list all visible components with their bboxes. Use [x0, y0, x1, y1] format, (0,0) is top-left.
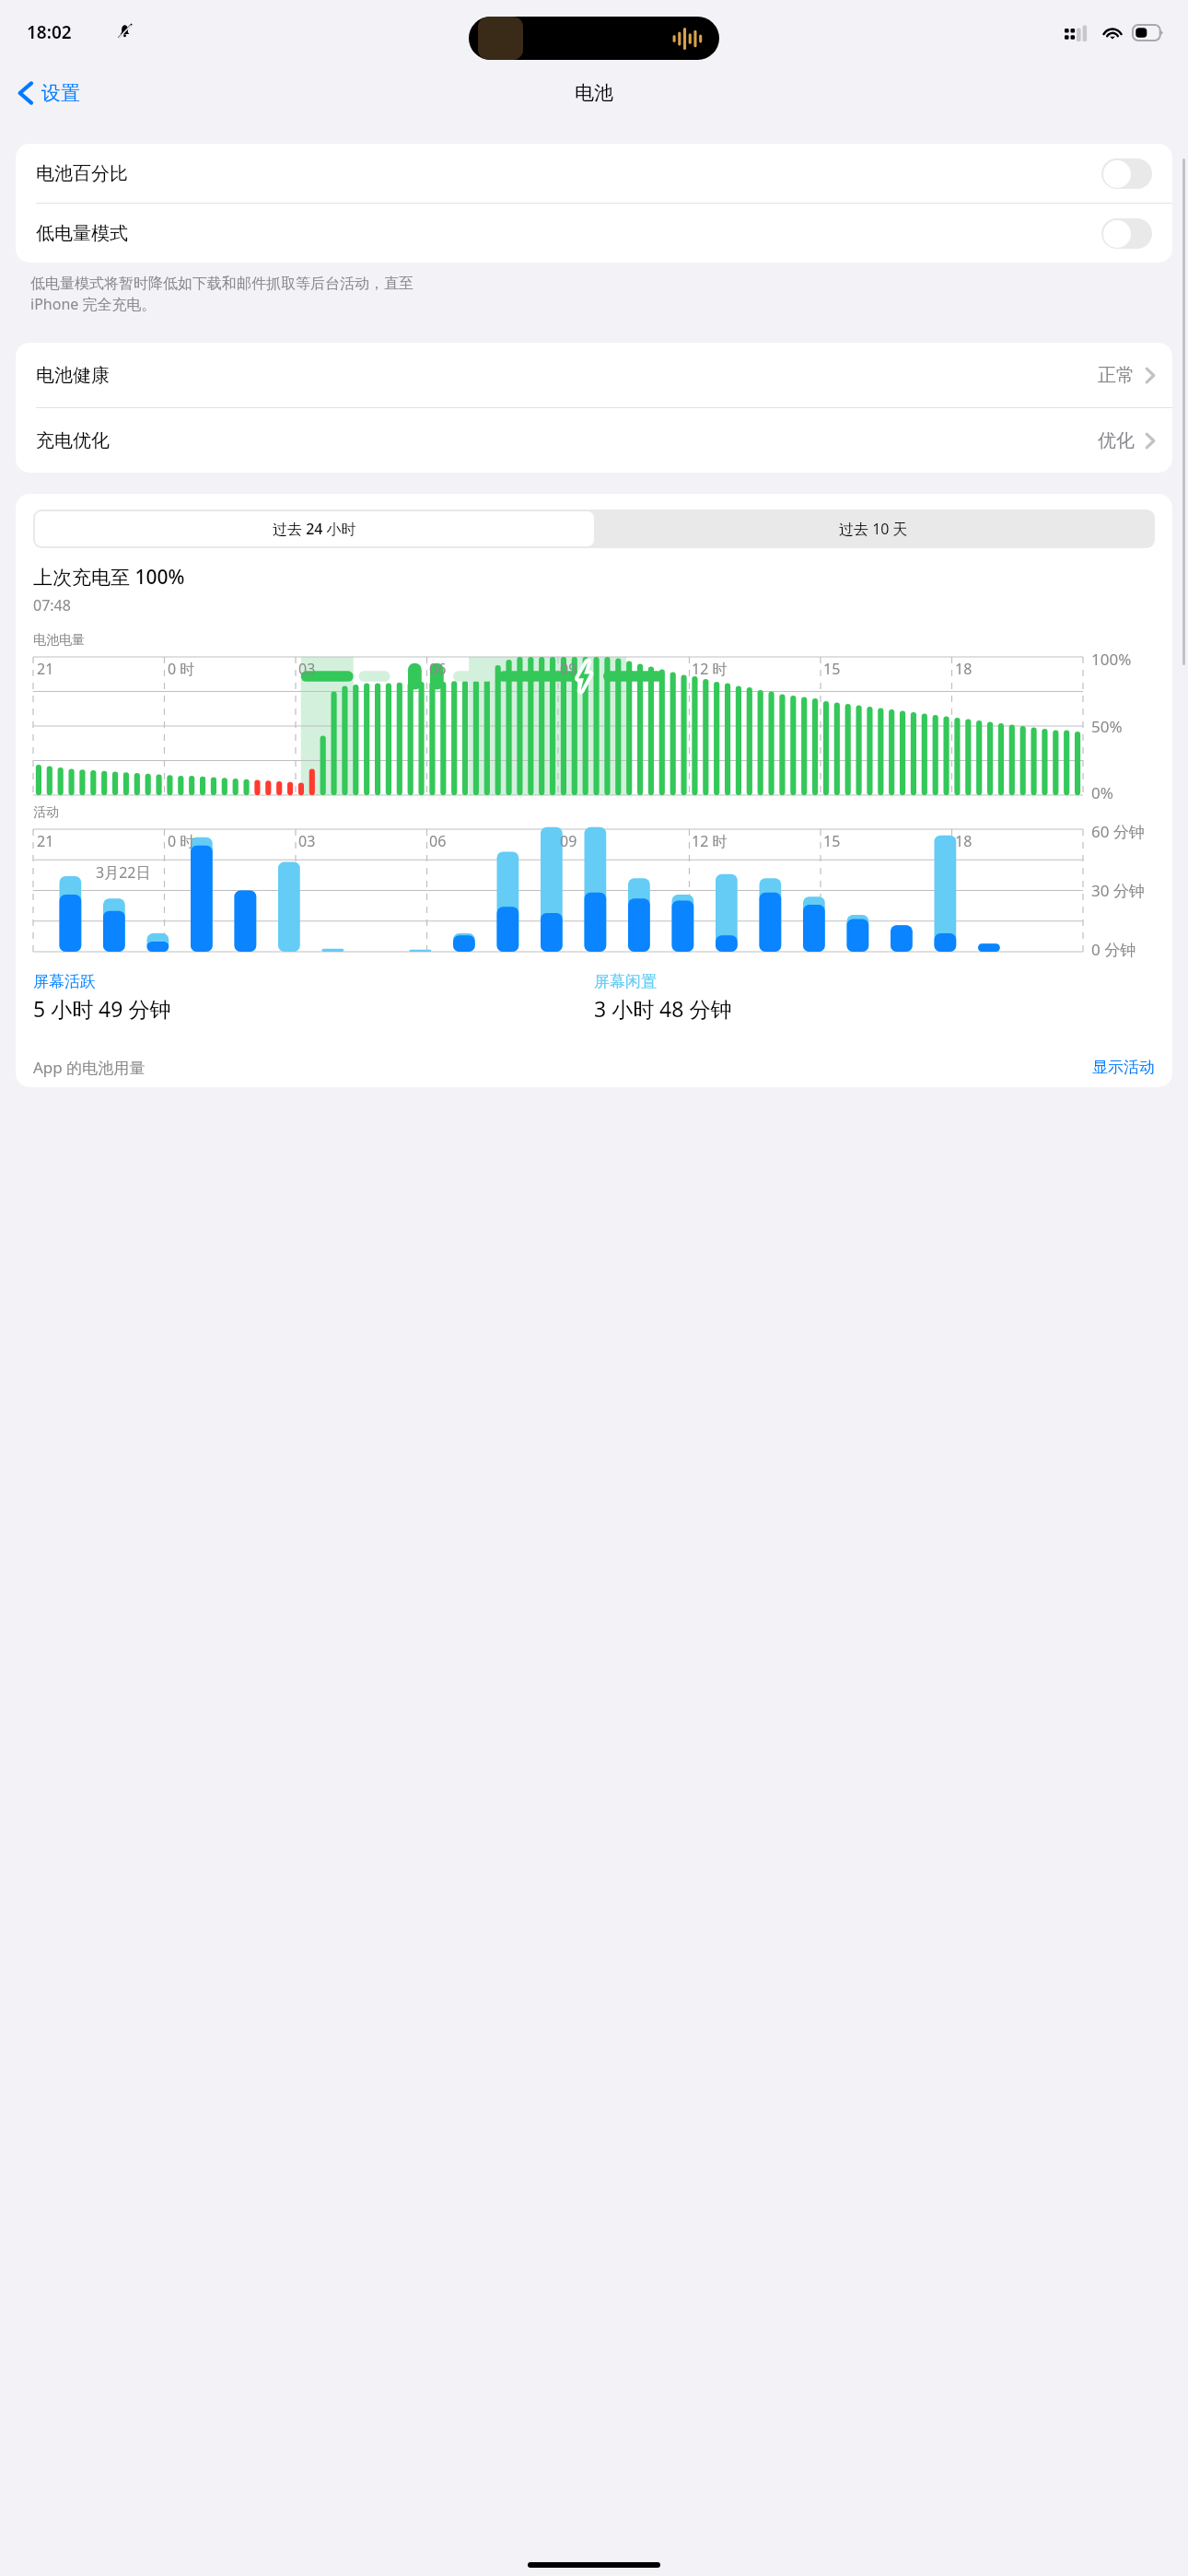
staticText: 15	[823, 659, 841, 679]
staticText: 06	[429, 831, 447, 851]
staticText: 电池健康	[36, 364, 1098, 387]
staticText: 5 小时 49 分钟	[33, 994, 171, 1023]
button[interactable]: 电池百分比	[16, 144, 1172, 203]
staticText: 09	[560, 659, 577, 679]
staticText: 12 时	[692, 831, 728, 851]
staticText: 电池百分比	[36, 162, 1101, 185]
staticText: 06	[429, 659, 447, 679]
staticText: 优化	[1098, 429, 1135, 452]
button[interactable]: 充电优化	[16, 408, 1172, 473]
staticText: 上次充电至 100%	[33, 564, 185, 591]
staticText: 屏幕闲置	[594, 972, 657, 991]
staticText: 设置	[41, 81, 80, 105]
staticText: 30 分钟	[1091, 880, 1145, 901]
staticText: 18:02	[27, 20, 72, 44]
button[interactable]: 电池健康	[16, 343, 1172, 407]
staticText: 3月22日	[96, 862, 151, 883]
staticText: 07:48	[33, 595, 71, 615]
button[interactable]: 设置	[0, 73, 91, 113]
staticText: 低电量模式将暂时降低如下载和邮件抓取等后台活动，直至 iPhone 完全充电。	[30, 275, 413, 314]
staticText: 03	[298, 659, 316, 679]
staticText: 18	[955, 831, 973, 851]
staticText: 正常	[1098, 364, 1135, 387]
staticText: 0 时	[168, 659, 195, 679]
staticText: 充电优化	[36, 429, 1098, 452]
staticText: 18	[955, 659, 973, 679]
staticText: 15	[823, 831, 841, 851]
staticText: 电池电量	[33, 632, 85, 649]
staticText: 0%	[1091, 782, 1113, 803]
staticText: 过去 24 小时	[273, 519, 356, 539]
staticText: 21	[37, 659, 54, 679]
staticText: 50%	[1091, 716, 1123, 737]
staticText: 09	[560, 831, 577, 851]
staticText: 过去 10 天	[839, 519, 908, 539]
staticText: 低电量模式	[36, 222, 1101, 245]
button[interactable]: 显示活动	[1092, 1058, 1155, 1077]
staticText: 活动	[33, 804, 59, 821]
staticText: 0 分钟	[1091, 939, 1136, 960]
staticText: 21	[37, 831, 54, 851]
button[interactable]: 过去 10 天	[594, 511, 1153, 546]
staticText: 0 时	[168, 831, 195, 851]
staticText: 屏幕活跃	[33, 972, 96, 991]
staticText: 12 时	[692, 659, 728, 679]
button[interactable]: 过去 24 小时	[35, 511, 594, 546]
staticText: 60 分钟	[1091, 821, 1145, 842]
button[interactable]: App 的电池用量	[33, 1057, 146, 1078]
button[interactable]: 低电量模式	[16, 204, 1172, 263]
staticText: 03	[298, 831, 316, 851]
staticText: 100%	[1091, 649, 1132, 670]
staticText: 3 小时 48 分钟	[594, 994, 732, 1023]
staticText: 电池	[575, 81, 613, 105]
